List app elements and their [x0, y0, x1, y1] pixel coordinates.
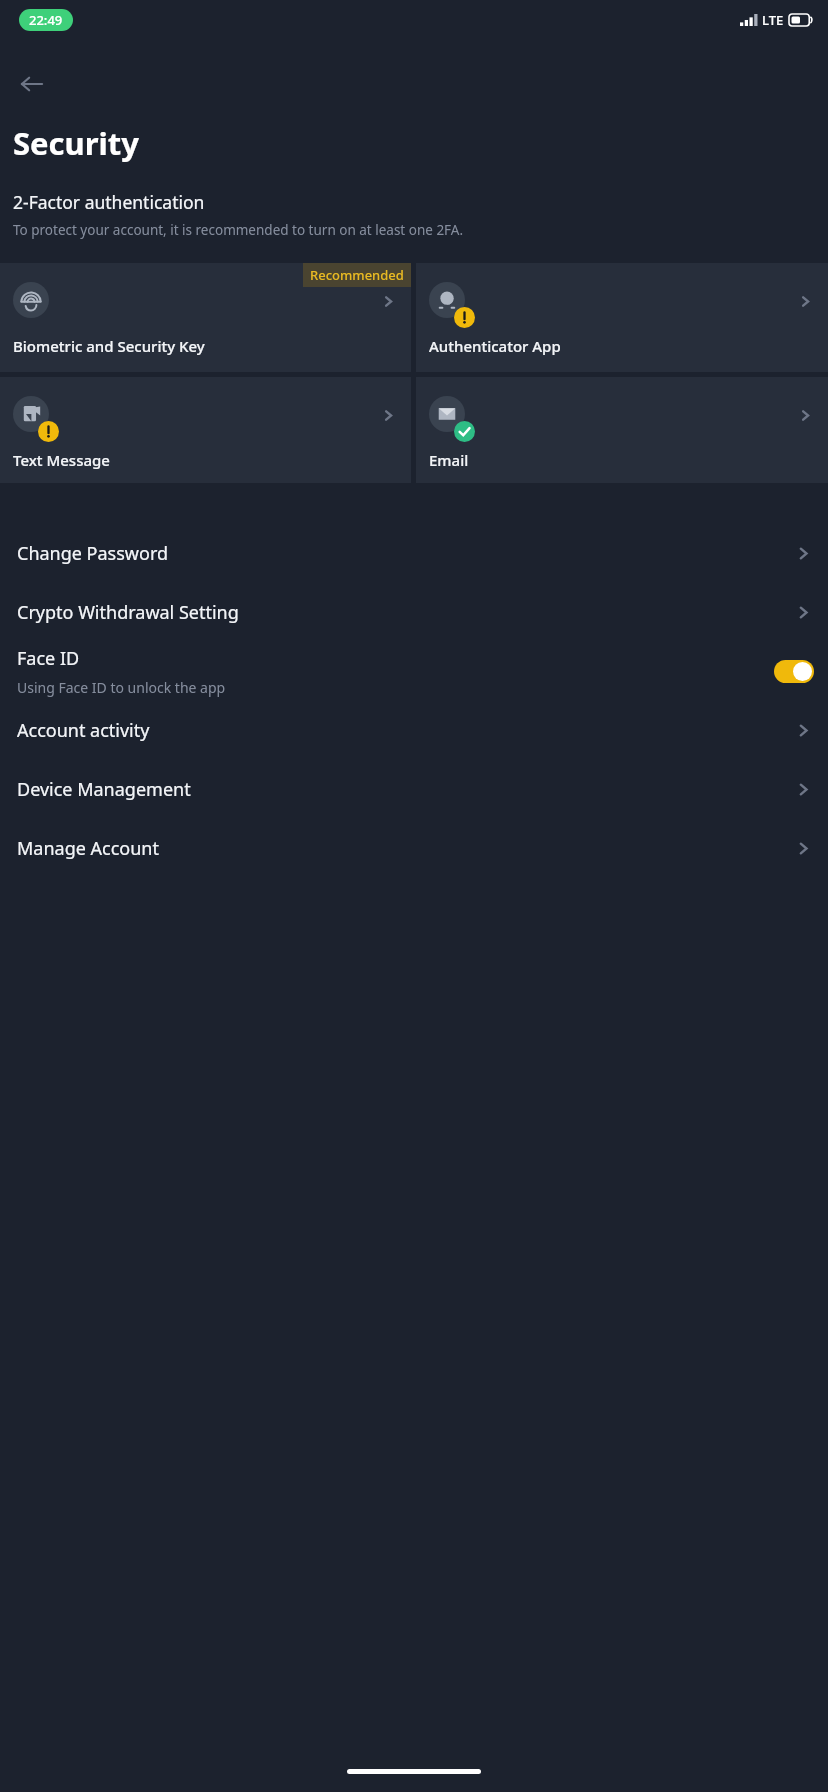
staticText: Change Password	[17, 541, 169, 566]
button[interactable]: Recommended	[0, 263, 411, 372]
button[interactable]: Authenticator App	[416, 263, 828, 372]
staticText: To protect your account, it is recommend…	[13, 221, 464, 239]
staticText: 22:49	[29, 11, 63, 29]
staticText: Authenticator App	[429, 336, 561, 356]
staticText: Manage Account	[17, 836, 159, 861]
staticText: Face ID	[17, 646, 80, 671]
staticText: 2-Factor authentication	[13, 190, 205, 214]
staticText: Biometric and Security Key	[13, 336, 205, 356]
staticText: Account activity	[17, 718, 150, 743]
staticText: Text Message	[13, 450, 110, 470]
button[interactable]: Change Password	[0, 524, 828, 583]
button[interactable]: Face ID	[0, 642, 828, 701]
staticText: Recommended	[310, 266, 404, 284]
button[interactable]: Back	[8, 60, 56, 108]
button[interactable]: Text Message	[0, 377, 411, 483]
button[interactable]: Face ID toggle	[774, 660, 814, 683]
staticText: Crypto Withdrawal Setting	[17, 600, 239, 625]
staticText: Device Management	[17, 777, 191, 802]
staticText: LTE	[762, 11, 784, 29]
staticText: Security	[13, 122, 140, 164]
button[interactable]: Crypto Withdrawal Setting	[0, 583, 828, 642]
staticText: Email	[429, 450, 469, 470]
button[interactable]: Manage Account	[0, 819, 828, 878]
button[interactable]: Email	[416, 377, 828, 483]
button[interactable]: Account activity	[0, 701, 828, 760]
staticText: Using Face ID to unlock the app	[17, 678, 226, 697]
button[interactable]: Device Management	[0, 760, 828, 819]
